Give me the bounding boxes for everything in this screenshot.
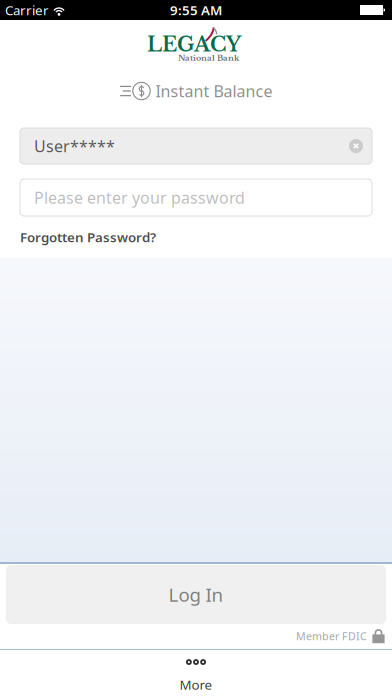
staticText: Carrier — [5, 1, 49, 19]
button[interactable]: Forgotten Password? — [20, 228, 156, 246]
button[interactable]: More — [0, 650, 392, 696]
staticText: Please enter your password — [34, 187, 245, 208]
staticText: 9:55 AM — [170, 1, 222, 19]
button[interactable]: Log In — [6, 565, 386, 624]
staticText: User***** — [34, 135, 115, 157]
staticText: Instant Balance — [155, 80, 272, 102]
staticText: National Bank — [178, 53, 239, 63]
staticText: Log In — [168, 582, 223, 607]
staticText: Member FDIC — [296, 629, 367, 643]
button[interactable]: Instant Balance — [119, 80, 272, 102]
staticText: LEGACY — [147, 32, 241, 57]
staticText: More — [179, 676, 212, 693]
staticText: Forgotten Password? — [20, 228, 156, 246]
button[interactable]: Clear username — [343, 129, 369, 163]
